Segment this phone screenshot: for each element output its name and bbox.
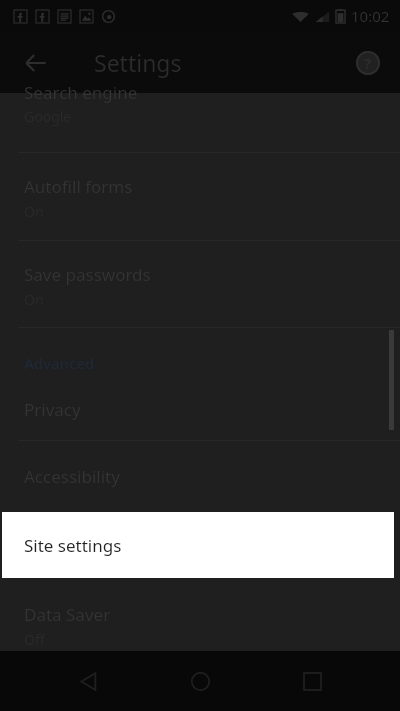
button[interactable]: Home <box>176 657 224 705</box>
staticText: Google <box>24 107 72 126</box>
staticText: ? <box>364 53 372 73</box>
staticText: Site settings <box>24 534 122 557</box>
staticText: Search engine <box>24 81 138 104</box>
staticText: Data Saver <box>24 603 111 626</box>
staticText: Off <box>24 630 45 649</box>
button[interactable]: Site settings <box>2 512 394 578</box>
staticText: 10:02 <box>351 6 390 26</box>
staticText: Autofill forms <box>24 175 133 198</box>
staticText: Accessibility <box>24 465 120 488</box>
staticText: Privacy <box>24 398 81 421</box>
staticText: Advanced <box>24 353 95 373</box>
button[interactable]: Help <box>346 41 390 85</box>
staticText: Save passwords <box>24 263 151 286</box>
staticText: Settings <box>94 47 182 78</box>
button[interactable]: Recents <box>288 657 336 705</box>
button[interactable]: Privacy <box>0 381 400 440</box>
button[interactable]: Back <box>14 41 58 85</box>
button[interactable]: Back <box>64 657 112 705</box>
